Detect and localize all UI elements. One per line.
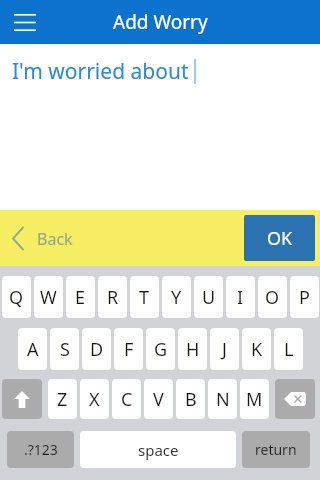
button[interactable]: space <box>80 431 236 468</box>
staticText: B <box>185 387 197 412</box>
staticText: OK <box>267 226 293 251</box>
button[interactable]: Y <box>162 276 191 318</box>
staticText: L <box>284 337 294 362</box>
staticText: Y <box>171 285 182 310</box>
button[interactable]: Z <box>48 379 77 419</box>
staticText: J <box>222 337 227 362</box>
staticText: I <box>237 285 244 310</box>
staticText: R <box>107 285 119 310</box>
button[interactable]: OK <box>244 215 315 261</box>
button[interactable]: S <box>50 328 79 370</box>
button[interactable]: N <box>208 379 237 419</box>
button[interactable]: T <box>130 276 159 318</box>
button[interactable]: W <box>34 276 63 318</box>
staticText: X <box>89 387 100 412</box>
button[interactable]: U <box>194 276 223 318</box>
staticText: T <box>139 285 150 310</box>
staticText: M <box>246 387 263 412</box>
button[interactable]: V <box>144 379 173 419</box>
button[interactable]: return <box>242 431 310 468</box>
button[interactable]: L <box>274 328 303 370</box>
staticText: .?123 <box>24 440 58 459</box>
staticText: space <box>138 440 179 460</box>
button[interactable]: F <box>114 328 143 370</box>
button[interactable]: B <box>176 379 205 419</box>
staticText: Add Worry <box>113 9 208 35</box>
staticText: A <box>27 337 39 362</box>
staticText: Back <box>37 228 73 250</box>
staticText: N <box>216 387 230 412</box>
staticText: W <box>40 285 57 310</box>
button[interactable]: A <box>18 328 47 370</box>
button[interactable]: Menu <box>6 3 44 41</box>
button[interactable]: X <box>80 379 109 419</box>
button[interactable]: H <box>178 328 207 370</box>
button[interactable]: Backspace <box>275 379 315 419</box>
staticText: D <box>90 337 104 362</box>
button[interactable]: M <box>240 379 269 419</box>
staticText: Z <box>57 387 68 412</box>
button[interactable]: P <box>290 276 319 318</box>
button[interactable]: Q <box>2 276 31 318</box>
button[interactable]: R <box>98 276 127 318</box>
staticText: C <box>121 387 133 412</box>
button[interactable]: O <box>258 276 287 318</box>
button[interactable]: Shift <box>2 379 42 419</box>
button[interactable]: I <box>226 276 255 318</box>
staticText: K <box>251 337 263 362</box>
staticText: P <box>299 285 310 310</box>
button[interactable]: I'm worried about <box>12 57 196 86</box>
button[interactable]: Back <box>12 227 73 250</box>
button[interactable]: .?123 <box>7 431 74 468</box>
staticText: F <box>124 337 134 362</box>
staticText: return <box>255 440 297 459</box>
staticText: G <box>154 337 168 362</box>
staticText: U <box>202 285 216 310</box>
staticText: S <box>60 337 70 362</box>
button[interactable]: D <box>82 328 111 370</box>
staticText: I'm worried about <box>12 57 189 86</box>
staticText: V <box>153 387 164 412</box>
button[interactable]: C <box>112 379 141 419</box>
button[interactable]: G <box>146 328 175 370</box>
staticText: O <box>265 285 280 310</box>
button[interactable]: K <box>242 328 271 370</box>
staticText: E <box>75 285 86 310</box>
staticText: H <box>186 337 200 362</box>
button[interactable]: J <box>210 328 239 370</box>
button[interactable]: E <box>66 276 95 318</box>
staticText: Q <box>9 285 24 310</box>
